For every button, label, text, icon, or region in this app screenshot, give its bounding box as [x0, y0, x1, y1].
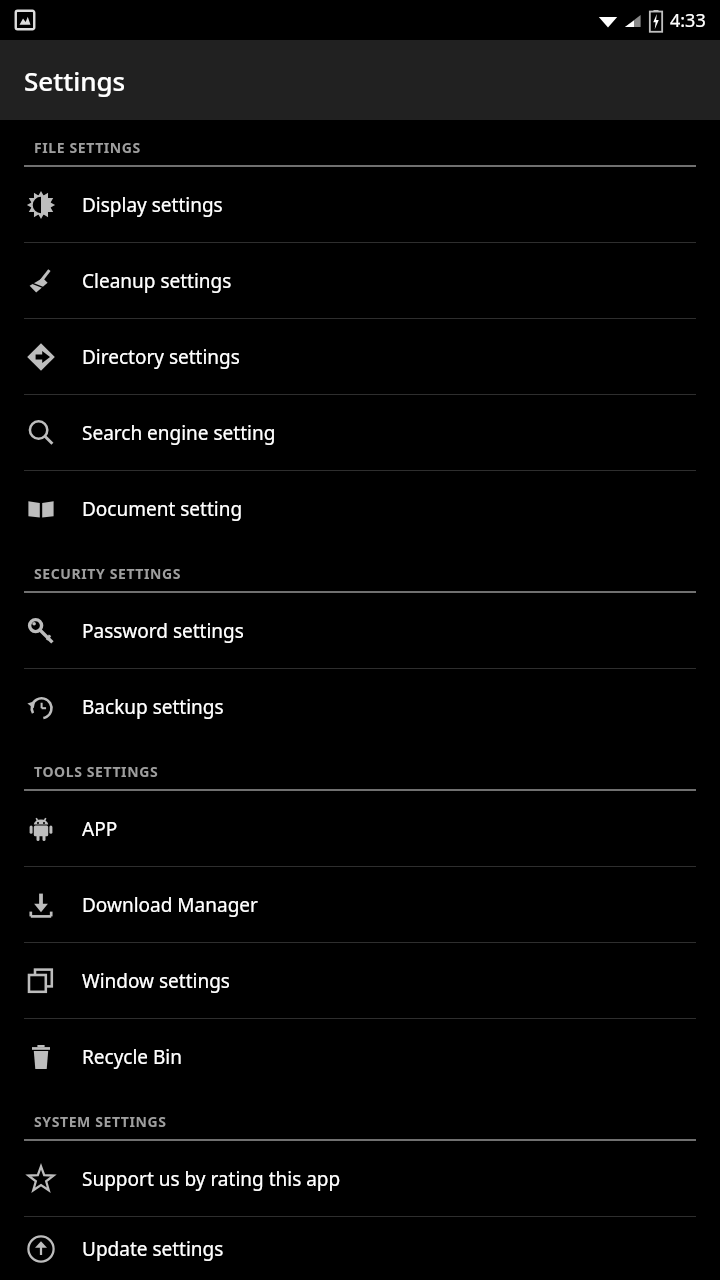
button[interactable]: Backup settings — [0, 669, 720, 744]
button[interactable]: Download Manager — [0, 867, 720, 942]
staticText: Backup settings — [82, 694, 224, 720]
staticText: Document setting — [82, 496, 243, 522]
staticText: Update settings — [82, 1236, 224, 1262]
staticText: Display settings — [82, 192, 223, 218]
button[interactable]: Support us by rating this app — [0, 1141, 720, 1216]
staticText: Download Manager — [82, 892, 258, 918]
button[interactable]: Document setting — [0, 471, 720, 546]
button[interactable]: Directory settings — [0, 319, 720, 394]
staticText: SECURITY SETTINGS — [34, 564, 182, 583]
staticText: TOOLS SETTINGS — [34, 762, 159, 781]
staticText: Cleanup settings — [82, 268, 232, 294]
button[interactable]: Cleanup settings — [0, 243, 720, 318]
staticText: Password settings — [82, 618, 244, 644]
button[interactable]: Recycle Bin — [0, 1019, 720, 1094]
button[interactable]: Display settings — [0, 167, 720, 242]
button[interactable]: APP — [0, 791, 720, 866]
staticText: 4:33 — [670, 8, 706, 33]
staticText: Directory settings — [82, 344, 240, 370]
staticText: Support us by rating this app — [82, 1166, 341, 1192]
staticText: Recycle Bin — [82, 1044, 183, 1070]
button[interactable]: Update settings — [0, 1217, 720, 1280]
staticText: Window settings — [82, 968, 230, 994]
staticText: Search engine setting — [82, 420, 276, 446]
button[interactable]: Window settings — [0, 943, 720, 1018]
button[interactable]: Search engine setting — [0, 395, 720, 470]
staticText: FILE SETTINGS — [34, 138, 141, 157]
staticText: SYSTEM SETTINGS — [34, 1112, 167, 1131]
button[interactable]: Password settings — [0, 593, 720, 668]
staticText: APP — [82, 816, 118, 842]
staticText: Settings — [24, 63, 126, 98]
